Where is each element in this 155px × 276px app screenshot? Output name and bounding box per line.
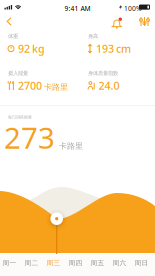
button[interactable]: 周三 [43, 258, 63, 268]
button[interactable]: Notifications [108, 13, 124, 31]
button[interactable]: 周六 [109, 258, 129, 268]
staticText: 2700 [18, 79, 42, 93]
staticText: kg [32, 42, 45, 56]
staticText: cm [116, 42, 131, 56]
staticText: 卡路里 [44, 82, 68, 92]
staticText: 周日 [134, 259, 148, 267]
button[interactable]: Back [3, 14, 15, 29]
staticText: 24.0 [98, 79, 119, 93]
button[interactable]: 身高 [88, 33, 131, 56]
staticText: 周五 [90, 259, 104, 267]
staticText: 周六 [112, 259, 126, 267]
button[interactable]: Day slider [50, 212, 63, 225]
staticText: 92 [18, 42, 30, 56]
staticText: 每日消耗能量 [8, 115, 32, 120]
staticText: 摄入能量 [8, 70, 28, 77]
button[interactable]: 体重 [8, 33, 45, 56]
staticText: 周二 [24, 259, 38, 267]
button[interactable]: 周日 [131, 258, 151, 268]
staticText: 体重 [8, 33, 18, 40]
staticText: 卡路里 [59, 141, 83, 151]
button[interactable]: 周四 [65, 258, 85, 268]
staticText: 100% [124, 4, 142, 13]
staticText: 273 [4, 118, 55, 157]
staticText: 周四 [68, 259, 82, 267]
button[interactable]: 摄入能量 [8, 70, 68, 93]
staticText: 周三 [46, 259, 60, 267]
button[interactable]: Filters [132, 14, 148, 29]
staticText: 身高 [88, 33, 98, 40]
button[interactable]: 周一 [0, 258, 19, 268]
staticText: 193 [96, 42, 114, 56]
button[interactable]: 周五 [87, 258, 107, 268]
button[interactable]: 身体质量指数 [88, 70, 119, 93]
staticText: 9:41 AM [64, 4, 90, 13]
button[interactable]: 周二 [21, 258, 41, 268]
staticText: 周一 [2, 259, 16, 267]
staticText: 身体质量指数 [88, 70, 118, 77]
